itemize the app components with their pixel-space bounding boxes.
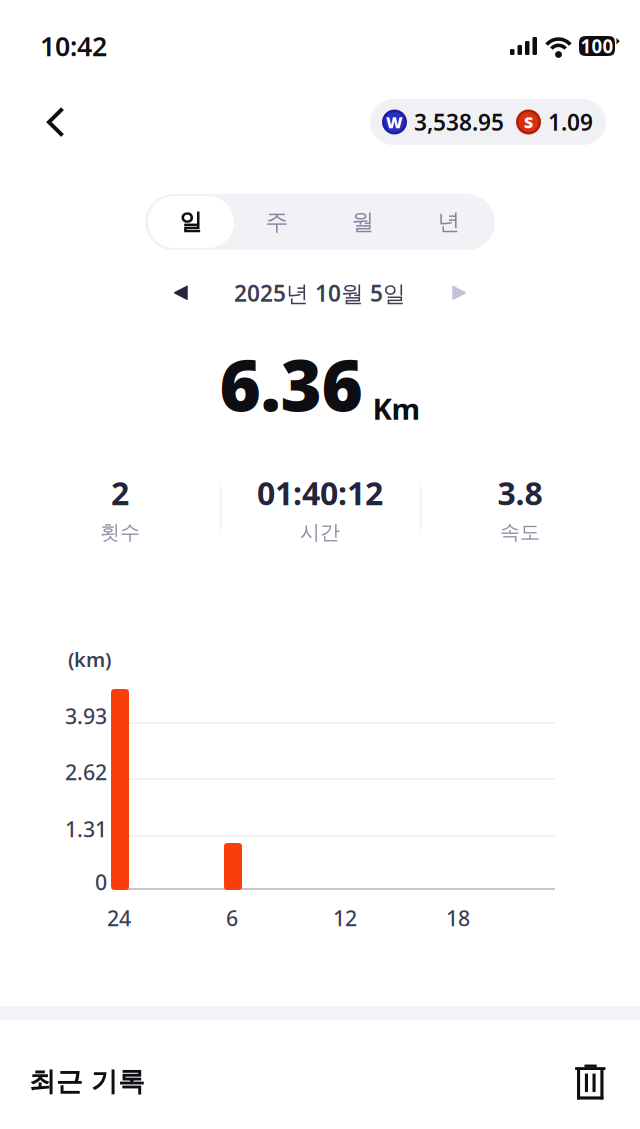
staticText: 월 (351, 208, 374, 236)
staticText: 0 (95, 868, 107, 896)
staticText: 3.8 (497, 471, 542, 514)
staticText: 6 (226, 904, 238, 932)
button[interactable]: W (370, 99, 606, 145)
staticText: W (386, 111, 403, 133)
staticText: Km (372, 389, 420, 428)
staticText: 주 (265, 208, 288, 236)
staticText: 10:42 (40, 28, 107, 64)
staticText: 12 (333, 904, 357, 932)
staticText: 24 (107, 904, 131, 932)
button[interactable]: 일 (148, 196, 234, 248)
staticText: 최근 기록 (29, 1065, 145, 1098)
staticText: 횟수 (100, 520, 140, 545)
button[interactable]: Previous day (158, 271, 204, 315)
button[interactable]: Delete records (563, 1036, 618, 1112)
staticText: 100 (580, 34, 613, 58)
staticText: 6.36 (219, 337, 362, 431)
staticText: 3.93 (65, 702, 107, 730)
staticText: 18 (446, 904, 470, 932)
staticText: 1.31 (65, 815, 107, 843)
button[interactable]: 주 (234, 196, 320, 248)
staticText: 년 (437, 208, 460, 236)
staticText: 속도 (500, 520, 540, 545)
staticText: 일 (179, 208, 202, 236)
staticText: 2025년 10월 5일 (234, 278, 406, 308)
button[interactable]: 년 (406, 196, 492, 248)
staticText: 3,538.95 (414, 107, 504, 137)
staticText: 1.09 (548, 107, 593, 137)
staticText: 2.62 (65, 758, 107, 786)
button[interactable]: Next day (436, 271, 482, 315)
staticText: S (524, 111, 533, 133)
staticText: 2 (111, 471, 129, 514)
staticText: 시간 (300, 520, 340, 545)
staticText: 01:40:12 (257, 471, 383, 514)
button[interactable]: Back (31, 98, 79, 146)
button[interactable]: 월 (320, 196, 406, 248)
staticText: (km) (68, 646, 111, 673)
